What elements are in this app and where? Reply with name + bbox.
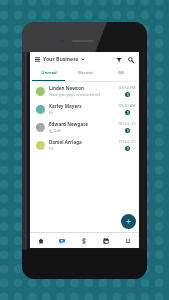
staticText: Call [54, 128, 61, 133]
staticText: Karley Mayers [49, 103, 82, 109]
staticText: 1 [127, 129, 129, 133]
button[interactable]: Unread [30, 66, 67, 81]
staticText: Have you guys received this? [49, 92, 101, 97]
staticText: Hi [49, 110, 53, 115]
staticText: 05:30 AM [119, 103, 136, 108]
button[interactable]: Linden Newton [30, 82, 139, 100]
staticText: 1 [127, 93, 129, 97]
button[interactable]: All [103, 66, 139, 81]
button[interactable]: Contacts [117, 233, 139, 248]
button[interactable]: Edward Newgate [30, 118, 139, 136]
staticText: 03:59 PM [119, 85, 136, 90]
staticText: Recent [78, 70, 93, 76]
button[interactable]: Filter [114, 55, 123, 64]
button[interactable]: Karley Mayers [30, 100, 139, 118]
staticText: All [118, 70, 124, 76]
staticText: Linden Newton [49, 85, 84, 91]
staticText: Edward Newgate [49, 121, 88, 127]
staticText: Daniel Arriaga [49, 139, 82, 145]
button[interactable]: Search [126, 55, 135, 64]
button[interactable]: Menu [34, 56, 41, 63]
button[interactable]: New message [121, 214, 136, 229]
button[interactable]: Home [30, 233, 51, 248]
staticText: 19 Oct, 21 [118, 139, 136, 144]
button[interactable]: Recent [67, 66, 103, 81]
button[interactable]: Messages [51, 233, 73, 248]
staticText: 1 [127, 111, 129, 115]
staticText: 18 Oct, 21 [118, 121, 136, 126]
staticText: 1 [127, 147, 129, 151]
button[interactable]: Calendar [95, 233, 117, 248]
staticText: Hi [49, 146, 53, 151]
button[interactable]: Payments [73, 233, 95, 248]
staticText: Your Business [43, 56, 79, 63]
staticText: Unread [41, 70, 57, 76]
button[interactable]: Daniel Arriaga [30, 136, 139, 154]
